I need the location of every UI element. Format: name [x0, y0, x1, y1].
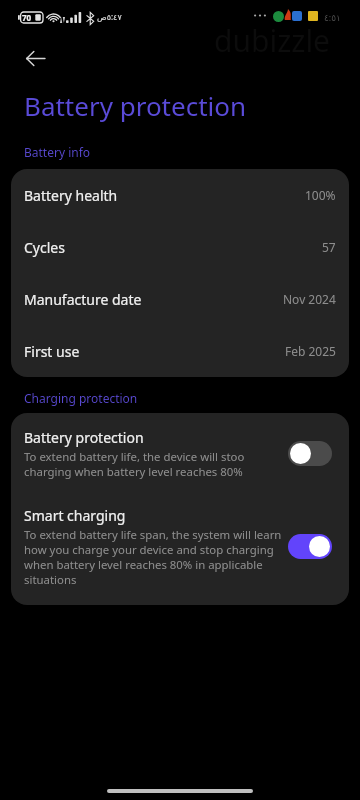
staticText: Nov 2024	[283, 291, 336, 307]
staticText: Smart charging	[24, 506, 126, 525]
staticText: To extend battery life, the device will …	[24, 449, 285, 479]
staticText: Battery protection	[24, 428, 144, 447]
button[interactable]: First use	[11, 325, 349, 377]
button[interactable]: Smart charging	[11, 492, 349, 605]
button[interactable]: Manufacture date	[11, 273, 349, 325]
staticText: 70	[22, 12, 32, 23]
staticText: Charging protection	[24, 390, 138, 406]
button[interactable]: Switch on	[288, 534, 332, 559]
button[interactable]: Cycles	[11, 221, 349, 273]
staticText: Cycles	[24, 238, 65, 257]
staticText: Battery health	[24, 186, 118, 205]
staticText: 100%	[305, 187, 336, 203]
staticText: Manufacture date	[24, 290, 142, 309]
staticText: To extend battery life span, the system …	[24, 527, 285, 587]
staticText: First use	[24, 342, 80, 361]
staticText: ٤:٥١	[324, 11, 341, 23]
staticText: Battery info	[24, 144, 91, 160]
staticText: Battery protection	[24, 88, 247, 123]
staticText: 57	[322, 239, 336, 255]
button[interactable]: Battery protection	[11, 413, 349, 492]
staticText: dubizzle	[214, 20, 331, 61]
button[interactable]: Battery health	[11, 169, 349, 221]
staticText: ٥:٤٧ص	[97, 11, 122, 22]
button[interactable]: Switch off	[288, 441, 332, 466]
staticText: Feb 2025	[285, 343, 336, 359]
button[interactable]: Back	[13, 36, 57, 80]
